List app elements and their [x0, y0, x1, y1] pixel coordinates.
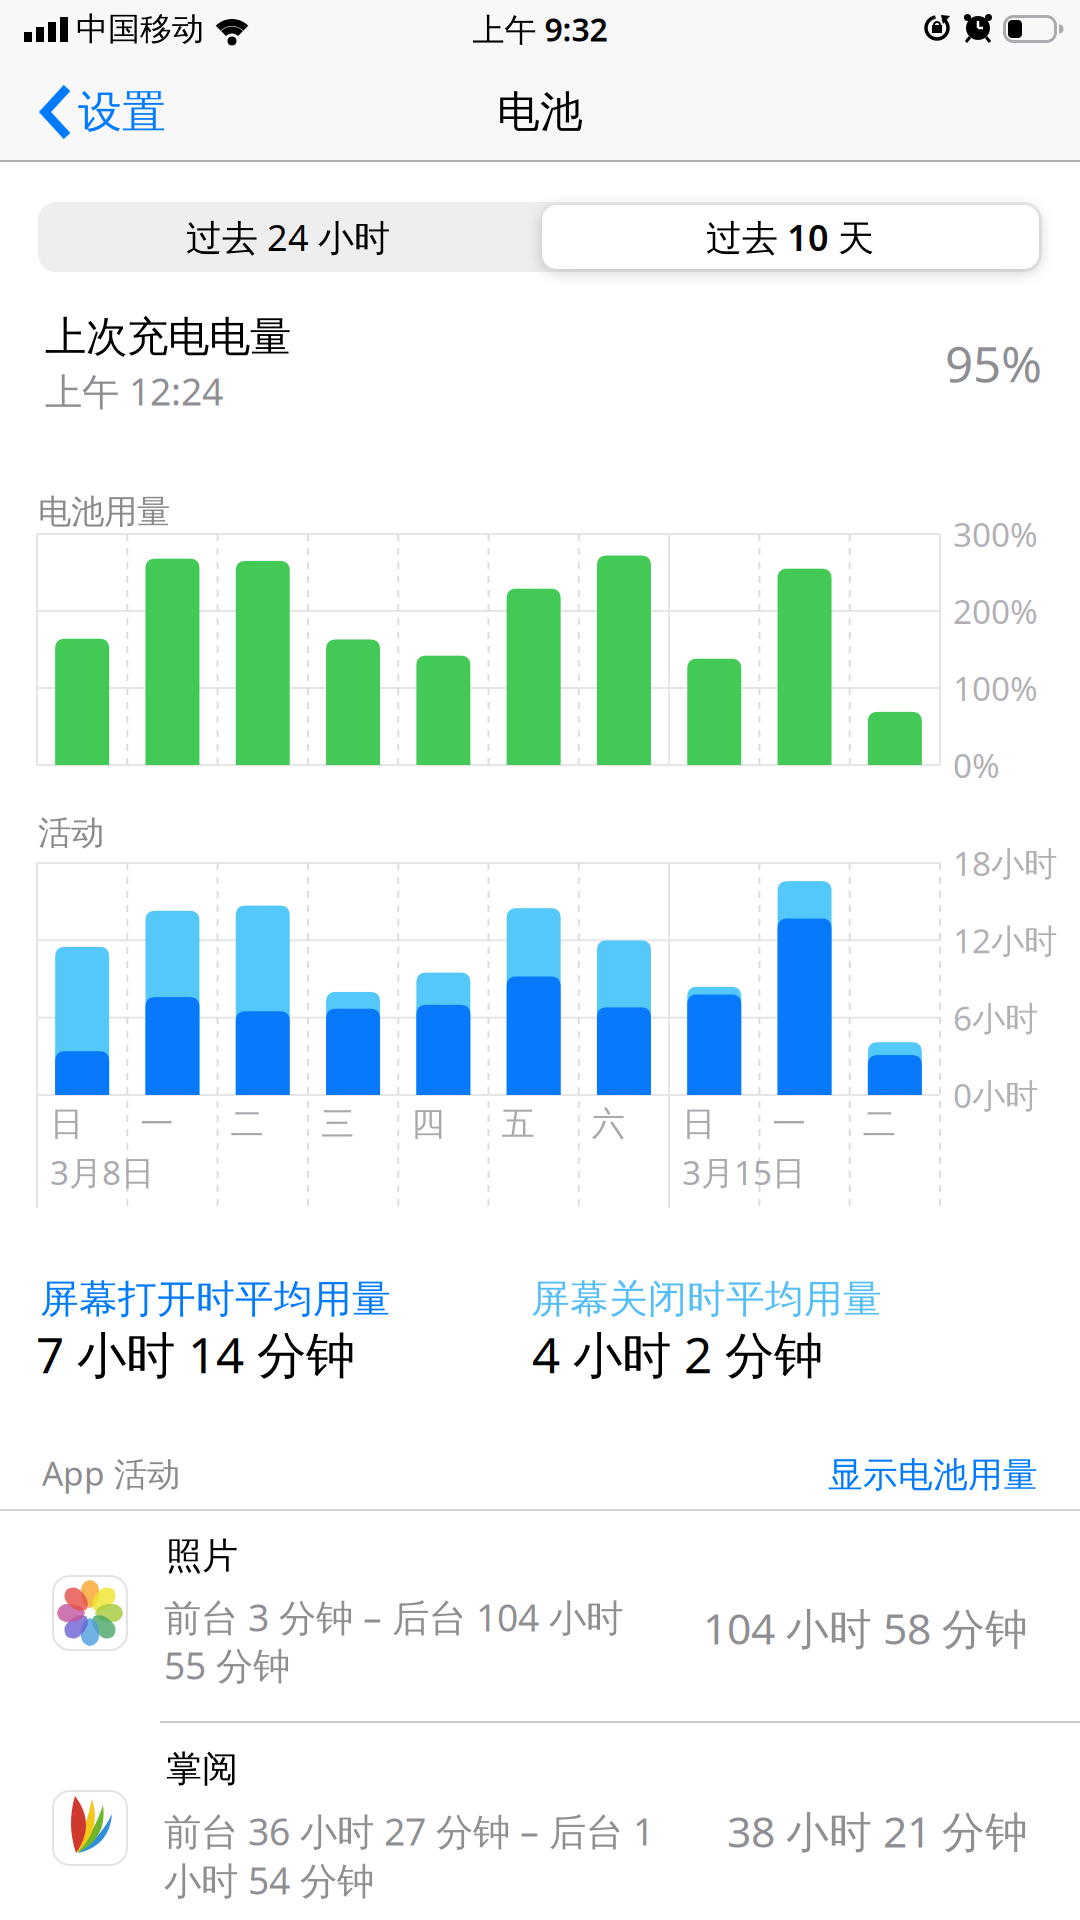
staticText: 38 小时 21 分钟 [727, 1803, 1028, 1859]
staticText: 过去 24 小时 [186, 213, 390, 261]
staticText: 一 [772, 1103, 805, 1144]
staticText: 电池 [497, 86, 583, 138]
staticText: 前台 36 小时 27 分钟 – 后台 1 [164, 1806, 654, 1856]
staticText: 六 [592, 1103, 625, 1144]
staticText: App 活动 [42, 1451, 180, 1495]
staticText: 中国移动 [76, 9, 204, 49]
staticText: 上午 9:32 [472, 8, 607, 50]
staticText: 过去 10 天 [706, 213, 874, 261]
staticText: 五 [501, 1103, 534, 1144]
staticText: 100% [953, 666, 1038, 710]
staticText: 屏幕关闭时平均用量 [531, 1275, 882, 1323]
staticText: 200% [953, 589, 1038, 633]
staticText: 日 [682, 1103, 715, 1144]
staticText: 上午 12:24 [45, 366, 223, 416]
staticText: 4 小时 2 分钟 [532, 1321, 823, 1387]
button[interactable]: 设置 [0, 67, 260, 157]
staticText: 0% [953, 743, 1000, 787]
button[interactable]: 照片 [0, 1519, 1080, 1729]
button[interactable]: 掌阅 [0, 1729, 1080, 1920]
staticText: 一 [140, 1103, 173, 1144]
button[interactable]: 过去 10 天 [542, 205, 1039, 269]
staticText: 日 [50, 1103, 83, 1144]
staticText: 显示电池用量 [828, 1454, 1038, 1496]
staticText: 掌阅 [166, 1747, 238, 1791]
staticText: 95% [945, 330, 1042, 396]
staticText: 照片 [166, 1534, 238, 1578]
staticText: 3月15日 [682, 1150, 805, 1194]
staticText: 二 [231, 1103, 264, 1144]
staticText: 300% [953, 512, 1038, 556]
staticText: 3月8日 [50, 1150, 154, 1194]
staticText: 55 分钟 [164, 1640, 290, 1690]
staticText: 电池用量 [38, 491, 170, 532]
button[interactable]: 过去 24 小时 [38, 202, 538, 272]
staticText: 屏幕打开时平均用量 [40, 1275, 391, 1323]
staticText: 7 小时 14 分钟 [36, 1321, 355, 1387]
staticText: 小时 54 分钟 [164, 1855, 374, 1905]
staticText: 上次充电电量 [45, 312, 291, 362]
staticText: 0小时 [953, 1073, 1038, 1117]
staticText: 活动 [38, 812, 104, 853]
staticText: 前台 3 分钟 – 后台 104 小时 [164, 1592, 623, 1642]
staticText: 6小时 [953, 996, 1038, 1040]
staticText: 三 [321, 1103, 354, 1144]
staticText: 12小时 [953, 918, 1057, 962]
staticText: 设置 [78, 85, 166, 139]
staticText: 四 [411, 1103, 444, 1144]
staticText: 二 [863, 1103, 896, 1144]
button[interactable]: 显示电池用量 [698, 1445, 1038, 1505]
staticText: 104 小时 58 分钟 [703, 1600, 1028, 1656]
staticText: 18小时 [953, 841, 1057, 885]
